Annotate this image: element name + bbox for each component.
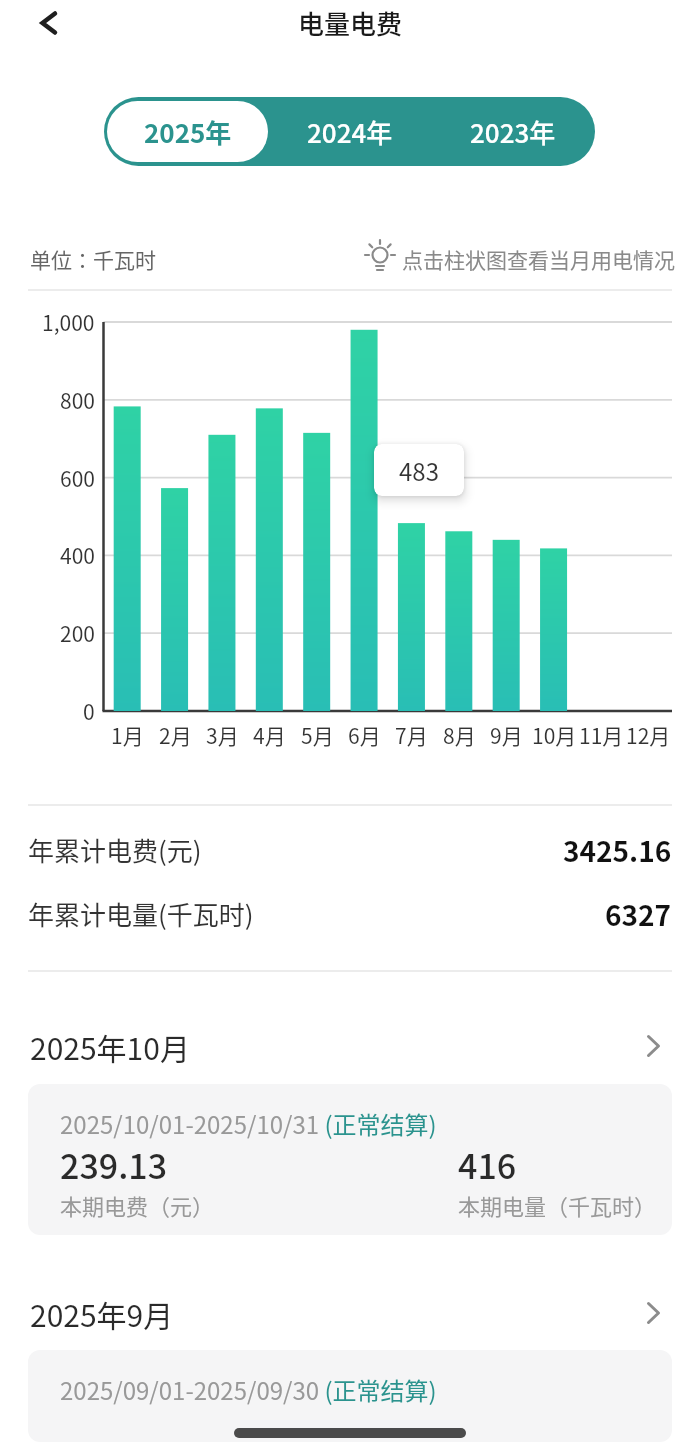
staticText: 400 [60, 540, 95, 570]
staticText: 电量电费 [298, 4, 403, 42]
staticText: 2025年 [144, 113, 232, 151]
staticText: 本期电量（千瓦时） [458, 1189, 657, 1221]
staticText: 600 [60, 463, 95, 493]
staticText: 2025年9月 [30, 1292, 174, 1335]
staticText: 2025/10/01-2025/10/31 (正常结算) [60, 1106, 437, 1141]
staticText: 11月 [579, 720, 624, 750]
staticText: 416 [458, 1140, 517, 1189]
staticText: 12月 [626, 720, 671, 750]
staticText: 6327 [605, 894, 672, 935]
button[interactable]: 2025/09/01-2025/09/30 (正常结算) [28, 1350, 672, 1442]
staticText: 2月 [159, 720, 192, 750]
button[interactable]: 2023年 [431, 97, 595, 166]
staticText: 单位：千瓦时 [30, 244, 156, 274]
button[interactable]: 2025年10月 [30, 1014, 660, 1078]
button[interactable]: 2025/10/01-2025/10/31 (正常结算) [28, 1084, 672, 1235]
staticText: 2023年 [470, 113, 556, 151]
staticText: 4月 [253, 720, 286, 750]
staticText: 200 [60, 618, 95, 648]
staticText: 3425.16 [563, 830, 672, 871]
button[interactable]: 2025年9月 [30, 1281, 660, 1345]
staticText: 2025年10月 [30, 1025, 190, 1068]
staticText: 8月 [443, 720, 476, 750]
staticText: 483 [399, 453, 439, 488]
staticText: 2024年 [307, 113, 393, 151]
button[interactable]: 2025年 [107, 101, 268, 162]
staticText: 2025/09/01-2025/09/30 (正常结算) [60, 1372, 437, 1407]
staticText: 年累计电量(千瓦时) [28, 895, 254, 933]
button[interactable] [30, 5, 66, 41]
staticText: 10月 [532, 720, 577, 750]
staticText: 5月 [301, 720, 334, 750]
staticText: 1月 [111, 720, 144, 750]
staticText: 3月 [206, 720, 239, 750]
button[interactable]: 2024年 [268, 97, 431, 166]
staticText: 9月 [490, 720, 523, 750]
staticText: 0 [83, 696, 95, 726]
staticText: 本期电费（元） [60, 1189, 215, 1221]
staticText: 年累计电费(元) [28, 831, 202, 869]
staticText: 6月 [348, 720, 381, 750]
staticText: 800 [60, 385, 95, 415]
staticText: 239.13 [60, 1140, 168, 1189]
button[interactable]: 483 [374, 444, 464, 496]
staticText: 1,000 [42, 307, 95, 337]
staticText: 点击柱状图查看当月用电情况 [402, 244, 675, 274]
staticText: 7月 [395, 720, 428, 750]
